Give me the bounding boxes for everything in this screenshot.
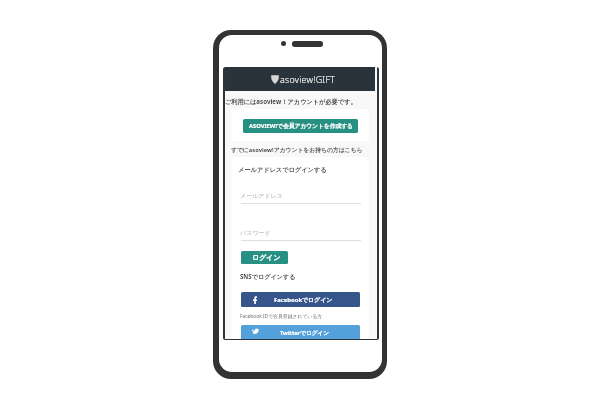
button[interactable]: パスワード	[241, 226, 361, 241]
button[interactable]: asoview! GIFT home	[225, 67, 375, 91]
staticText: Facebook IDで会員登録されている方	[240, 313, 323, 320]
staticText: パスワード	[240, 229, 271, 237]
staticText: Facebookでログイン	[274, 296, 333, 304]
staticText: ログイン	[252, 253, 281, 262]
staticText: すでにasoview!アカウントをお持ちの方はこちら	[231, 146, 363, 154]
staticText: メールアドレス	[240, 192, 283, 200]
button[interactable]: ASOVIEW!で会員アカウントを作成する	[243, 119, 358, 133]
staticText: ASOVIEW!で会員アカウントを作成する	[249, 122, 353, 130]
button[interactable]: ログイン	[241, 251, 288, 264]
button[interactable]: Facebookでログイン	[241, 292, 360, 307]
button[interactable]: Twitterでログイン	[241, 325, 360, 339]
staticText: Twitterでログイン	[280, 329, 329, 337]
staticText: ご利用にはasoview！アカウントが必要です。	[225, 97, 357, 105]
staticText: SNSでログインする	[240, 272, 296, 280]
staticText: メールアドレスでログインする	[238, 166, 327, 174]
button[interactable]: メールアドレス	[241, 188, 361, 204]
staticText: asoview!GIFT	[280, 73, 336, 85]
